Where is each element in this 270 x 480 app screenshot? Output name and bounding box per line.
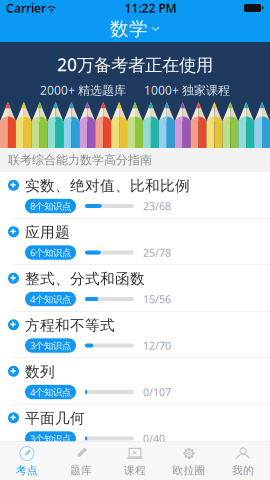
- staticText: 4个知识点: [30, 386, 71, 398]
- staticText: 数列: [25, 363, 55, 381]
- staticText: 1000+ 独家课程: [144, 82, 230, 98]
- button[interactable]: 考点: [0, 442, 54, 480]
- staticText: 12/70: [143, 338, 171, 353]
- button[interactable]: 数学: [0, 16, 270, 42]
- staticText: 3个知识点: [30, 339, 71, 352]
- staticText: 整式、分式和函数: [25, 270, 145, 288]
- staticText: 4个知识点: [30, 293, 71, 305]
- staticText: 23/68: [143, 199, 171, 213]
- staticText: Carrier: [6, 0, 46, 16]
- staticText: 8个知识点: [30, 200, 71, 212]
- staticText: 20万备考者正在使用: [57, 53, 213, 76]
- button[interactable]: 应用题: [0, 218, 270, 264]
- button[interactable]: 数列: [0, 358, 270, 404]
- staticText: 课程: [124, 464, 146, 477]
- button[interactable]: 实数、绝对值、比和比例: [0, 172, 270, 218]
- button[interactable]: 课程: [108, 442, 162, 480]
- staticText: 平面几何: [25, 409, 85, 427]
- staticText: 25/78: [143, 245, 171, 260]
- staticText: 考点: [16, 464, 38, 477]
- staticText: 11:22 PM: [124, 0, 176, 16]
- button[interactable]: 平面几何: [0, 404, 270, 450]
- button[interactable]: 我的: [216, 442, 270, 480]
- staticText: 6个知识点: [30, 246, 71, 259]
- staticText: 0/40: [143, 431, 165, 446]
- staticText: 联考综合能力数学高分指南: [8, 153, 152, 167]
- staticText: 3个知识点: [30, 432, 71, 445]
- staticText: 方程和不等式: [25, 316, 115, 334]
- staticText: 0/107: [143, 385, 171, 399]
- button[interactable]: 方程和不等式: [0, 311, 270, 357]
- staticText: 我的: [232, 464, 254, 477]
- staticText: 15/56: [143, 292, 171, 306]
- button[interactable]: 整式、分式和函数: [0, 265, 270, 311]
- staticText: 题库: [70, 464, 92, 477]
- staticText: 欧拉圈: [172, 464, 205, 477]
- button[interactable]: 欧拉圈: [162, 442, 216, 480]
- staticText: 应用题: [25, 223, 70, 241]
- staticText: 2000+ 精选题库: [40, 82, 126, 98]
- staticText: 实数、绝对值、比和比例: [25, 177, 190, 195]
- staticText: 数学: [110, 17, 148, 40]
- button[interactable]: 题库: [54, 442, 108, 480]
